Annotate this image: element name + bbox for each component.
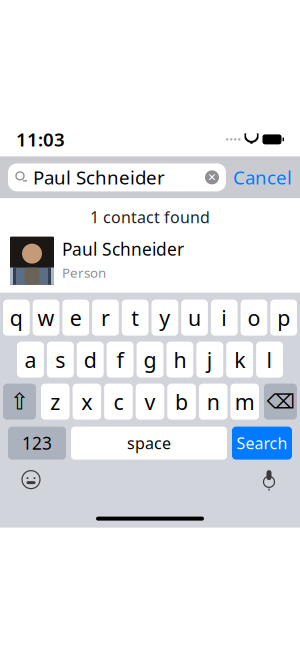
staticText: u [188,303,201,332]
button[interactable]: l [256,342,283,378]
staticText: a [24,345,36,374]
button[interactable]: u [181,300,208,336]
button[interactable]: e [62,300,89,336]
button[interactable]: Clear text [202,166,222,188]
staticText: f [117,345,124,374]
button[interactable]: m [230,384,259,420]
staticText: 11:03 [16,127,65,152]
button[interactable]: Cancel [233,165,292,190]
button[interactable]: Paul Schneider [0,237,300,285]
staticText: c [113,387,123,416]
button[interactable]: g [137,342,163,378]
staticText: p [277,303,290,332]
staticText: e [70,303,82,332]
staticText: space [127,432,171,454]
staticText: o [247,303,260,332]
staticText: w [37,303,54,332]
staticText: b [175,387,188,416]
button[interactable]: w [33,300,59,336]
button[interactable]: Search [232,427,292,460]
staticText: v [144,387,155,416]
button[interactable]: q [3,300,30,336]
button[interactable]: Shift [3,384,36,420]
staticText: i [221,303,227,332]
button[interactable]: s [47,342,74,378]
button[interactable]: t [122,300,148,336]
button[interactable]: i [211,300,238,336]
button[interactable]: n [199,384,227,420]
button[interactable]: p [270,300,297,336]
button[interactable]: c [104,384,133,420]
staticText: ⇧ [10,389,29,414]
staticText: t [131,303,139,332]
button[interactable]: Dictation [252,465,286,495]
staticText: d [84,345,97,374]
button[interactable]: Emoji keyboard [14,465,48,495]
staticText: Paul Schneider [33,165,165,190]
button[interactable]: f [107,342,134,378]
button[interactable]: y [151,300,178,336]
button[interactable]: d [77,342,104,378]
staticText: g [143,345,156,374]
staticText: l [267,345,273,374]
staticText: z [50,387,60,416]
button[interactable]: Delete [264,384,297,420]
staticText: k [234,345,245,374]
staticText: ⌫ [266,390,294,413]
button[interactable]: v [136,384,164,420]
staticText: s [55,345,65,374]
button[interactable]: space [71,427,227,460]
staticText: n [207,387,220,416]
staticText: Search [236,432,287,454]
staticText: ✕ [207,171,216,183]
staticText: r [101,303,110,332]
staticText: Paul Schneider [62,238,184,261]
button[interactable]: k [226,342,253,378]
staticText: y [159,303,170,332]
button[interactable]: a [17,342,44,378]
button[interactable]: x [73,384,101,420]
staticText: m [235,387,255,416]
button[interactable]: z [41,384,70,420]
staticText: j [207,345,213,374]
staticText: Cancel [233,165,292,190]
staticText: x [81,387,92,416]
button[interactable]: 123 [8,427,66,460]
staticText: 123 [22,432,52,455]
button[interactable]: h [166,342,193,378]
staticText: q [10,303,23,332]
staticText: 1 contact found [90,206,210,228]
staticText: h [173,345,186,374]
staticText: Person [62,264,106,281]
button[interactable]: o [241,300,267,336]
button[interactable]: b [167,384,196,420]
button[interactable]: r [92,300,119,336]
button[interactable]: j [196,342,223,378]
